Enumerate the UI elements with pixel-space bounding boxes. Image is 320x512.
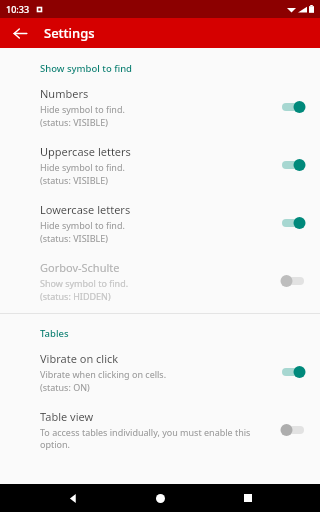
staticText: (status: VISIBLE) bbox=[40, 232, 108, 244]
staticText: Vibrate on click bbox=[40, 351, 119, 366]
staticText: Gorbov-Schulte bbox=[40, 260, 120, 275]
button[interactable]: Recent apps bbox=[233, 484, 263, 512]
button[interactable] bbox=[276, 419, 310, 441]
staticText: Show symbol to find bbox=[40, 62, 132, 75]
button[interactable]: Back bbox=[58, 484, 88, 512]
button[interactable]: Lowercase letters bbox=[0, 191, 320, 249]
button[interactable] bbox=[276, 212, 310, 234]
staticText: 10:33 bbox=[6, 3, 30, 15]
button[interactable]: Home bbox=[145, 484, 175, 512]
staticText: Numbers bbox=[40, 86, 89, 101]
staticText: To access tables individually, you must … bbox=[40, 426, 268, 450]
staticText: Lowercase letters bbox=[40, 202, 131, 217]
button[interactable]: Table view bbox=[0, 398, 320, 455]
staticText: Settings bbox=[44, 24, 95, 42]
staticText: (status: VISIBLE) bbox=[40, 174, 108, 186]
button[interactable] bbox=[276, 361, 310, 383]
staticText: Tables bbox=[40, 327, 69, 340]
button[interactable]: Gorbov-Schulte bbox=[0, 249, 320, 307]
staticText: (status: VISIBLE) bbox=[40, 116, 108, 128]
button[interactable]: Vibrate on click bbox=[0, 340, 320, 398]
button[interactable] bbox=[276, 96, 310, 118]
button[interactable]: Numbers bbox=[0, 75, 320, 133]
staticText: (status: HIDDEN) bbox=[40, 290, 111, 302]
button[interactable]: Uppercase letters bbox=[0, 133, 320, 191]
staticText: Hide symbol to find. bbox=[40, 103, 125, 115]
staticText: (status: ON) bbox=[40, 381, 90, 393]
staticText: Hide symbol to find. bbox=[40, 219, 125, 231]
button[interactable] bbox=[276, 270, 310, 292]
staticText: Vibrate when clicking on cells. bbox=[40, 368, 167, 380]
button[interactable]: Back bbox=[6, 19, 34, 47]
staticText: Uppercase letters bbox=[40, 144, 131, 159]
staticText: Table view bbox=[40, 409, 94, 424]
staticText: Show symbol to find. bbox=[40, 277, 129, 289]
staticText: Hide symbol to find. bbox=[40, 161, 125, 173]
button[interactable] bbox=[276, 154, 310, 176]
